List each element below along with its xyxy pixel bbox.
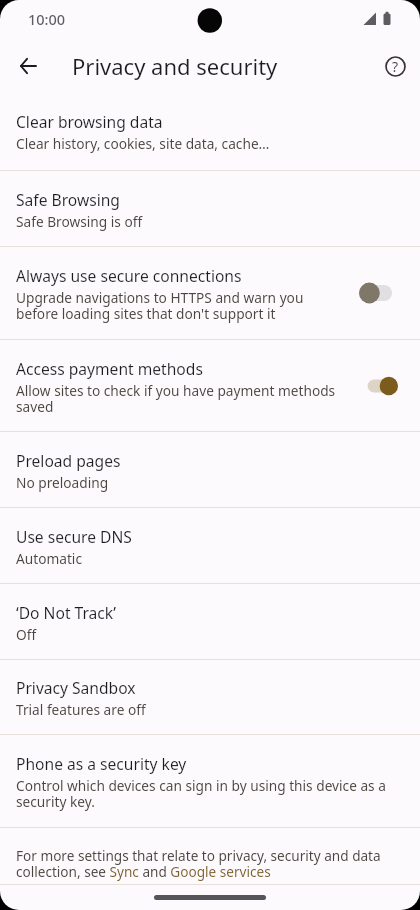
button[interactable]: Help (371, 42, 419, 90)
staticText: Allow sites to check if you have payment… (16, 381, 346, 416)
button[interactable]: Switch on (359, 375, 398, 397)
staticText: No preloading (16, 473, 109, 492)
staticText: Control which devices can sign in by usi… (16, 776, 398, 811)
staticText: Upgrade navigations to HTTPS and warn yo… (16, 288, 346, 323)
staticText: For more settings that relate to privacy… (16, 846, 404, 881)
button[interactable]: Privacy Sandbox (0, 660, 420, 734)
staticText: Trial features are off (16, 700, 146, 719)
staticText: 10:00 (28, 9, 66, 29)
staticText: Phone as a security key (16, 753, 187, 774)
button[interactable]: Preload pages (0, 432, 420, 507)
button[interactable]: Clear browsing data (0, 92, 420, 170)
staticText: Clear history, cookies, site data, cache… (16, 134, 270, 153)
staticText: ‘Do Not Track’ (16, 602, 116, 623)
staticText: Off (16, 625, 37, 644)
staticText: ? (392, 57, 399, 76)
button[interactable]: ‘Do Not Track’ (0, 584, 420, 659)
staticText: Always use secure connections (16, 265, 242, 286)
button[interactable]: Safe Browsing (0, 171, 420, 246)
button[interactable]: Phone as a security key (0, 735, 420, 827)
staticText: Clear browsing data (16, 111, 163, 132)
staticText: Preload pages (16, 450, 121, 471)
staticText: Privacy Sandbox (16, 677, 136, 698)
button[interactable]: Back (4, 42, 52, 90)
button[interactable]: Always use secure connections (0, 247, 420, 339)
button[interactable]: Switch off (359, 282, 398, 304)
staticText: Safe Browsing (16, 189, 120, 210)
staticText: Safe Browsing is off (16, 212, 143, 231)
staticText: Automatic (16, 549, 82, 568)
staticText: Access payment methods (16, 358, 203, 379)
button[interactable]: Access payment methods (0, 340, 420, 431)
staticText: Privacy and security (72, 51, 278, 81)
button[interactable]: Use secure DNS (0, 508, 420, 583)
staticText: Use secure DNS (16, 526, 132, 547)
